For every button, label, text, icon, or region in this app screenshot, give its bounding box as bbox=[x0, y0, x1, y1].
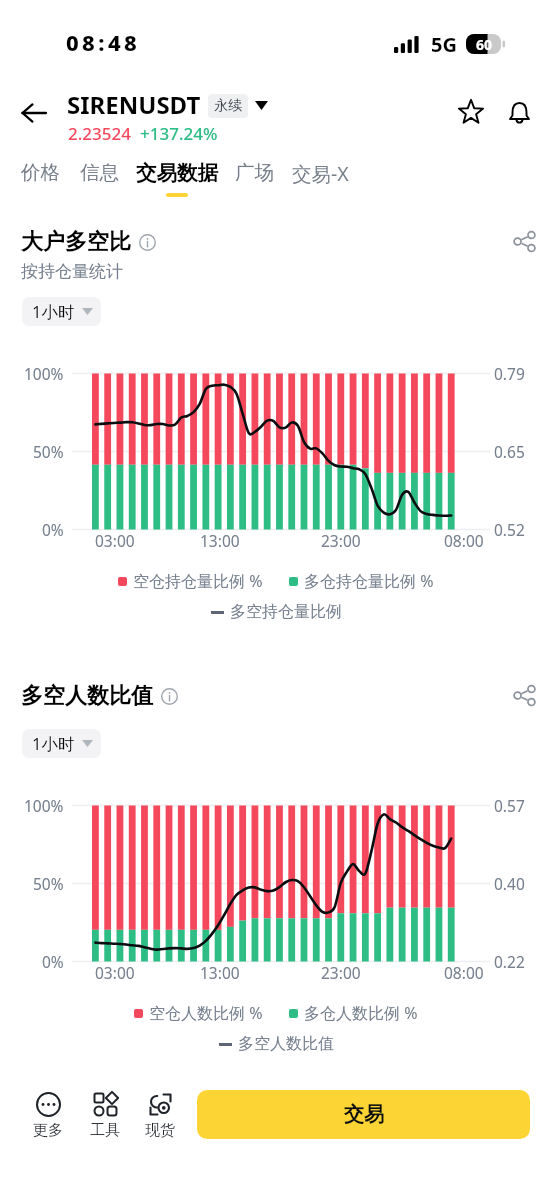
staticText: 13:00 bbox=[200, 530, 240, 551]
staticText: 13:00 bbox=[200, 962, 240, 983]
staticText: 广场 bbox=[235, 160, 274, 185]
button[interactable]: Add to favorites bbox=[448, 89, 494, 135]
button[interactable]: 广场 bbox=[227, 152, 282, 200]
staticText: 100% bbox=[24, 795, 64, 816]
staticText: 交易-X bbox=[292, 160, 349, 187]
staticText: 23:00 bbox=[321, 530, 361, 551]
staticText: 1小时 bbox=[32, 732, 75, 755]
staticText: 更多 bbox=[33, 1121, 63, 1140]
staticText: 0.57 bbox=[494, 795, 525, 816]
staticText: 1小时 bbox=[32, 300, 75, 323]
staticText: 交易 bbox=[344, 1102, 384, 1127]
staticText: 08:00 bbox=[444, 962, 484, 983]
button[interactable]: Tools bbox=[79, 1092, 131, 1140]
staticText: 交易数据 bbox=[136, 160, 218, 186]
staticText: 03:00 bbox=[95, 530, 135, 551]
staticText: 0.40 bbox=[494, 873, 525, 894]
staticText: +137.24% bbox=[140, 122, 218, 145]
staticText: 0% bbox=[42, 951, 64, 972]
staticText: 08:00 bbox=[444, 530, 484, 551]
staticText: 价格 bbox=[21, 160, 60, 185]
button[interactable]: 交易数据 bbox=[128, 152, 226, 200]
staticText: 0.65 bbox=[494, 441, 525, 462]
staticText: 100% bbox=[24, 363, 64, 384]
staticText: 信息 bbox=[80, 160, 119, 185]
staticText: 03:00 bbox=[95, 962, 135, 983]
staticText: 2.23524 bbox=[68, 122, 131, 145]
staticText: 多空人数比值 bbox=[238, 1034, 334, 1054]
staticText: 现货 bbox=[145, 1121, 175, 1140]
button[interactable]: Back bbox=[10, 89, 58, 137]
button[interactable]: 信息 bbox=[72, 152, 127, 200]
staticText: 多仓人数比例 % bbox=[304, 1002, 418, 1024]
staticText: SIRENUSDT bbox=[67, 88, 201, 121]
staticText: 60 bbox=[476, 35, 493, 54]
staticText: 0% bbox=[42, 519, 64, 540]
staticText: 0.22 bbox=[494, 951, 525, 972]
staticText: 多空人数比值 bbox=[21, 682, 153, 710]
staticText: 工具 bbox=[90, 1121, 120, 1140]
button[interactable]: 交易 bbox=[197, 1090, 530, 1139]
staticText: 0.52 bbox=[494, 519, 525, 540]
button[interactable]: 交易-X bbox=[284, 152, 357, 200]
staticText: 多空持仓量比例 bbox=[230, 602, 342, 622]
staticText: 50% bbox=[33, 873, 64, 894]
staticText: 多仓持仓量比例 % bbox=[304, 570, 434, 592]
staticText: 大户多空比 bbox=[21, 228, 131, 256]
staticText: 08:48 bbox=[66, 27, 141, 57]
staticText: 50% bbox=[33, 441, 64, 462]
staticText: 5G bbox=[431, 31, 457, 58]
staticText: 0.79 bbox=[494, 363, 525, 384]
button[interactable]: Spot bbox=[134, 1092, 186, 1140]
staticText: 空仓持仓量比例 % bbox=[133, 570, 263, 592]
staticText: 空仓人数比例 % bbox=[149, 1002, 263, 1024]
button[interactable]: Share bbox=[502, 673, 546, 717]
button[interactable]: Notifications bbox=[496, 89, 542, 135]
staticText: 永续 bbox=[214, 97, 242, 115]
button[interactable]: Share bbox=[502, 219, 546, 263]
button[interactable]: More bbox=[22, 1092, 74, 1140]
staticText: 按持仓量统计 bbox=[21, 261, 123, 282]
button[interactable]: 价格 bbox=[13, 152, 68, 200]
button[interactable]: 1小时 bbox=[22, 297, 101, 326]
button[interactable]: 1小时 bbox=[22, 729, 101, 758]
staticText: 23:00 bbox=[321, 962, 361, 983]
